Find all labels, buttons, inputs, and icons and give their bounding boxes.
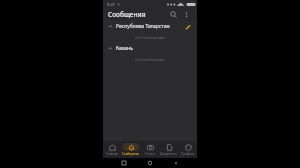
button[interactable]: More options bbox=[181, 9, 192, 20]
staticText: Сообщения bbox=[108, 10, 146, 19]
button[interactable]: Документы bbox=[159, 141, 178, 158]
button[interactable]: Казань bbox=[103, 43, 197, 54]
button[interactable]: Услуги bbox=[140, 141, 159, 158]
button[interactable]: Back bbox=[171, 158, 181, 168]
button[interactable]: Республика Татарстан bbox=[103, 21, 197, 32]
button[interactable]: Главная bbox=[103, 141, 121, 158]
staticText: 9:41 bbox=[107, 2, 115, 7]
staticText: Услуги bbox=[145, 152, 155, 156]
button[interactable]: Home bbox=[145, 158, 155, 168]
staticText: Сообщения bbox=[122, 152, 140, 156]
staticText: Документы bbox=[160, 152, 177, 156]
staticText: Главная bbox=[106, 152, 118, 156]
staticText: Казань bbox=[116, 45, 192, 52]
staticText: нет сообщений bbox=[135, 57, 165, 62]
staticText: Профиль bbox=[181, 152, 195, 156]
staticText: Республика Татарстан bbox=[116, 23, 183, 30]
button[interactable]: Сообщения bbox=[121, 141, 140, 158]
button[interactable]: Search bbox=[168, 9, 179, 20]
button[interactable]: Edit bbox=[183, 22, 192, 31]
button[interactable]: нет сообщений bbox=[103, 54, 197, 65]
button[interactable]: Recents bbox=[119, 158, 129, 168]
button[interactable]: нет сообщений bbox=[103, 32, 197, 43]
button[interactable]: Профиль bbox=[178, 141, 197, 158]
staticText: нет сообщений bbox=[135, 35, 165, 40]
